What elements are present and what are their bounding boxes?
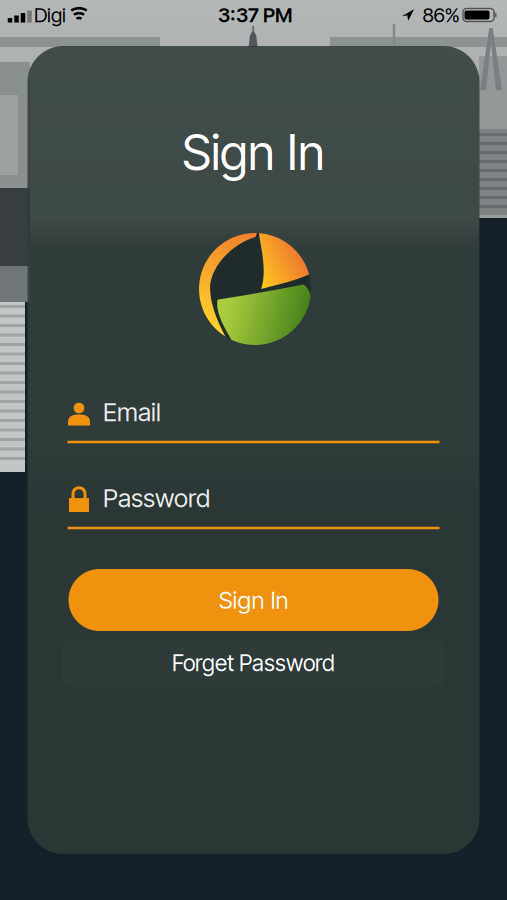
button[interactable]: Forget Password <box>62 639 444 687</box>
staticText: Sign In <box>182 123 325 181</box>
button[interactable]: Email <box>0 0 507 900</box>
staticText: Password <box>103 483 210 513</box>
button[interactable]: Sign In <box>68 569 438 631</box>
staticText: Forget Password <box>172 650 335 676</box>
staticText: 86% <box>422 3 459 27</box>
staticText: Digi <box>34 3 66 27</box>
staticText: 3:37 PM <box>218 3 292 27</box>
staticText: Email <box>103 397 161 427</box>
button[interactable]: Password <box>0 0 507 900</box>
staticText: Sign In <box>218 586 288 614</box>
